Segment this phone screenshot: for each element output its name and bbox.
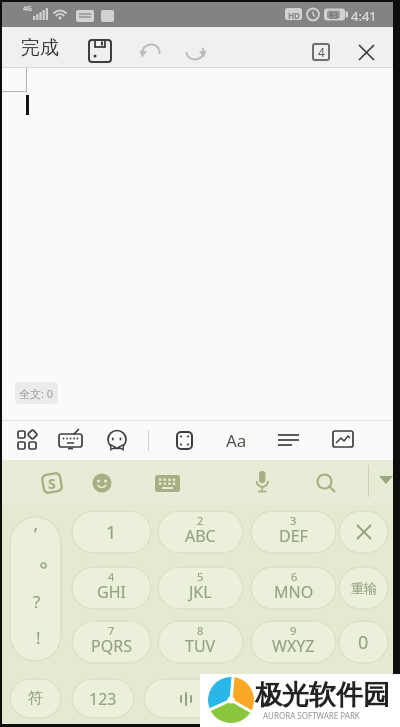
- staticText: ?: [33, 590, 41, 613]
- button[interactable]: [316, 473, 336, 493]
- staticText: 9: [290, 623, 297, 638]
- staticText: 重输: [351, 580, 377, 596]
- button[interactable]: 6: [250, 566, 337, 610]
- button[interactable]: [58, 429, 83, 451]
- button[interactable]: 重输: [338, 566, 389, 610]
- staticText: 4:41: [351, 7, 377, 25]
- staticText: JKL: [189, 581, 212, 603]
- button[interactable]: 8: [157, 620, 244, 664]
- staticText: !: [36, 626, 41, 649]
- button[interactable]: [325, 678, 389, 719]
- button[interactable]: 0: [338, 620, 389, 664]
- button[interactable]: [184, 40, 206, 62]
- staticText: PQRS: [91, 635, 132, 657]
- button[interactable]: [277, 429, 300, 451]
- staticText: 完成: [21, 36, 59, 60]
- button[interactable]: 9: [250, 620, 337, 664]
- button[interactable]: [140, 40, 162, 62]
- button[interactable]: [355, 41, 377, 63]
- button[interactable]: [88, 39, 112, 63]
- button[interactable]: 4: [71, 566, 152, 610]
- staticText: MNO: [274, 581, 314, 603]
- staticText: HD: [288, 10, 300, 21]
- button[interactable]: 1: [71, 510, 152, 554]
- button[interactable]: [332, 430, 354, 450]
- staticText: 极光软件园: [255, 678, 390, 712]
- staticText: 0: [358, 630, 369, 655]
- staticText: GHI: [97, 581, 126, 603]
- staticText: 4: [108, 569, 115, 584]
- button[interactable]: 123: [71, 678, 135, 719]
- staticText: 4: [318, 44, 325, 60]
- button[interactable]: [92, 473, 112, 493]
- button[interactable]: [106, 429, 128, 453]
- staticText: 3: [290, 513, 297, 528]
- staticText: ’: [34, 522, 38, 547]
- button[interactable]: [254, 471, 270, 495]
- button[interactable]: Aa: [222, 429, 250, 451]
- button[interactable]: 符: [9, 678, 62, 719]
- button[interactable]: 7: [71, 620, 152, 664]
- staticText: DEF: [279, 525, 308, 547]
- button[interactable]: 5: [157, 566, 244, 610]
- staticText: WXYZ: [272, 635, 315, 657]
- button[interactable]: [16, 429, 38, 451]
- staticText: AURORA SOFTWARE PARK: [263, 710, 360, 721]
- button[interactable]: 3: [250, 510, 337, 554]
- staticText: 8: [197, 623, 204, 638]
- staticText: 全文: 0: [19, 386, 54, 401]
- button[interactable]: [143, 678, 317, 719]
- button[interactable]: [176, 431, 193, 450]
- button[interactable]: [378, 474, 394, 488]
- staticText: 4G: [23, 4, 33, 14]
- staticText: 1: [106, 520, 117, 545]
- staticText: TUV: [185, 635, 216, 657]
- staticText: 7: [108, 623, 115, 638]
- button[interactable]: 完成: [12, 33, 68, 63]
- staticText: 5: [197, 569, 204, 584]
- staticText: Aa: [226, 429, 247, 451]
- staticText: S: [48, 474, 56, 493]
- button[interactable]: 2: [157, 510, 244, 554]
- staticText: 2: [197, 513, 204, 528]
- button[interactable]: S: [41, 472, 63, 494]
- staticText: 83: [329, 10, 339, 21]
- staticText: ABC: [185, 525, 216, 547]
- staticText: 6: [291, 569, 298, 584]
- button[interactable]: ’: [9, 516, 62, 662]
- button[interactable]: [338, 510, 389, 554]
- staticText: 符: [28, 689, 43, 708]
- staticText: 123: [89, 688, 117, 710]
- button[interactable]: [155, 475, 180, 492]
- button[interactable]: 4: [312, 43, 330, 61]
